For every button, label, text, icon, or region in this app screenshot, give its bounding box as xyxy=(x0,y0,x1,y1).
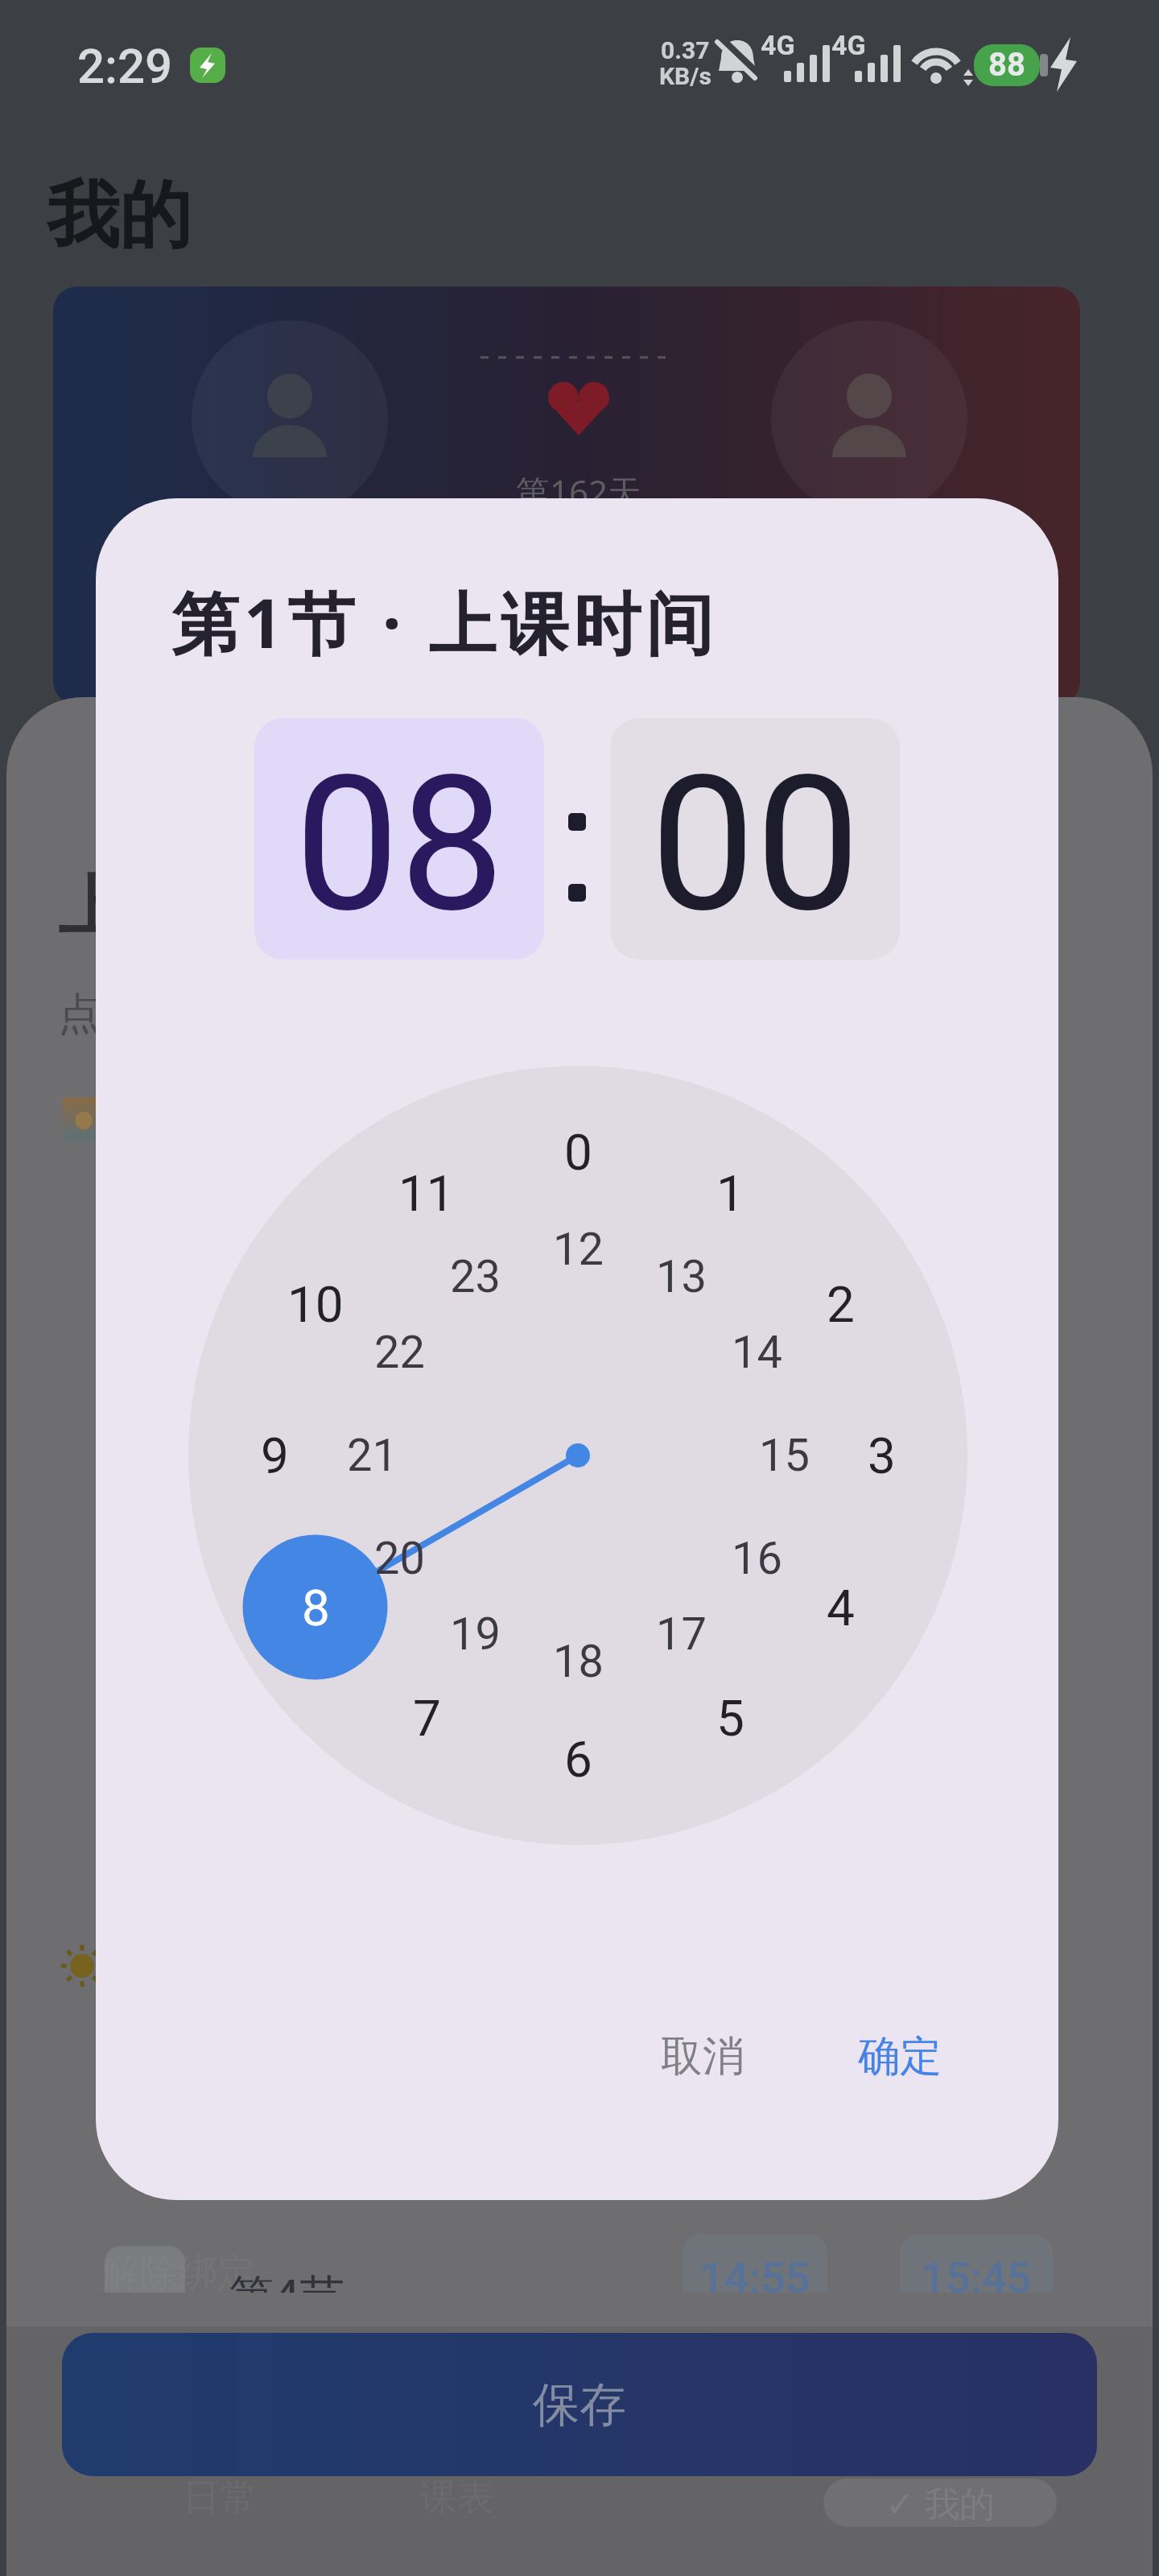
staticText: KB/s xyxy=(659,62,711,90)
staticText: 0 xyxy=(564,1123,592,1182)
staticText: 13 xyxy=(656,1250,707,1303)
staticText: 22 xyxy=(374,1326,425,1379)
staticText: 9 xyxy=(261,1426,289,1485)
staticText: 上课时间 xyxy=(58,865,322,948)
staticText: 08 xyxy=(295,736,505,955)
staticText: 18 xyxy=(553,1635,604,1688)
staticText: 4 xyxy=(827,1579,855,1637)
staticText: 10 xyxy=(287,1275,344,1334)
staticText: 12 xyxy=(553,1223,604,1276)
staticText: 第1节 · 上课时间 xyxy=(171,576,719,668)
staticText: 19 xyxy=(450,1608,501,1661)
staticText: 我的 xyxy=(47,170,192,261)
staticText: 16 xyxy=(732,1532,782,1585)
staticText: 0.37 xyxy=(661,36,710,64)
staticText: 课表 xyxy=(420,2475,494,2521)
staticText: 00 xyxy=(650,736,860,955)
staticText: 11 xyxy=(398,1164,455,1223)
staticText: 5 xyxy=(716,1689,744,1748)
staticText: 2:29 xyxy=(77,38,173,94)
button[interactable]: 15:45 xyxy=(900,2234,1053,2293)
staticText: ✓ 我的 xyxy=(885,2479,996,2527)
button[interactable]: 14:55 xyxy=(683,2234,827,2293)
button[interactable]: ✓ 我的 xyxy=(823,2479,1057,2527)
staticText: 4G xyxy=(761,29,795,61)
staticText: 日常 xyxy=(183,2475,257,2521)
button[interactable]: 课表 xyxy=(256,2434,658,2562)
staticText: 21 xyxy=(347,1429,398,1482)
staticText: 2 xyxy=(827,1275,855,1334)
staticText: 23 xyxy=(450,1250,501,1303)
staticText: 14:55 xyxy=(699,2252,810,2293)
staticText: 15:45 xyxy=(921,2252,1032,2293)
staticText: 15 xyxy=(759,1429,810,1482)
staticText: 保存 xyxy=(533,2376,626,2434)
staticText: 1 xyxy=(716,1164,744,1223)
staticText: 6 xyxy=(564,1730,592,1789)
button[interactable]: 取消 xyxy=(614,2013,791,2101)
staticText: 3 xyxy=(868,1426,896,1485)
staticText: 点击修改时间 xyxy=(58,987,319,1042)
staticText: 第162天 xyxy=(516,469,642,514)
staticText: 第4节 xyxy=(229,2264,345,2293)
staticText: 14 xyxy=(732,1326,782,1379)
staticText: 取消 xyxy=(661,2030,744,2083)
button[interactable]: 保存 xyxy=(62,2333,1097,2476)
button[interactable]: 08 xyxy=(254,718,544,960)
staticText: 7 xyxy=(413,1689,441,1748)
staticText: 解除绑定 xyxy=(101,2249,256,2293)
staticText: 20 xyxy=(374,1532,425,1585)
staticText: 17 xyxy=(656,1608,707,1661)
staticText: 88 xyxy=(988,46,1025,84)
button[interactable]: 确定 xyxy=(811,2013,988,2101)
button[interactable]: 日常 xyxy=(19,2434,421,2562)
staticText: 8 xyxy=(302,1579,330,1637)
button[interactable]: 00 xyxy=(610,718,900,960)
staticText: 确定 xyxy=(858,2030,942,2083)
staticText: 4G xyxy=(831,29,866,61)
